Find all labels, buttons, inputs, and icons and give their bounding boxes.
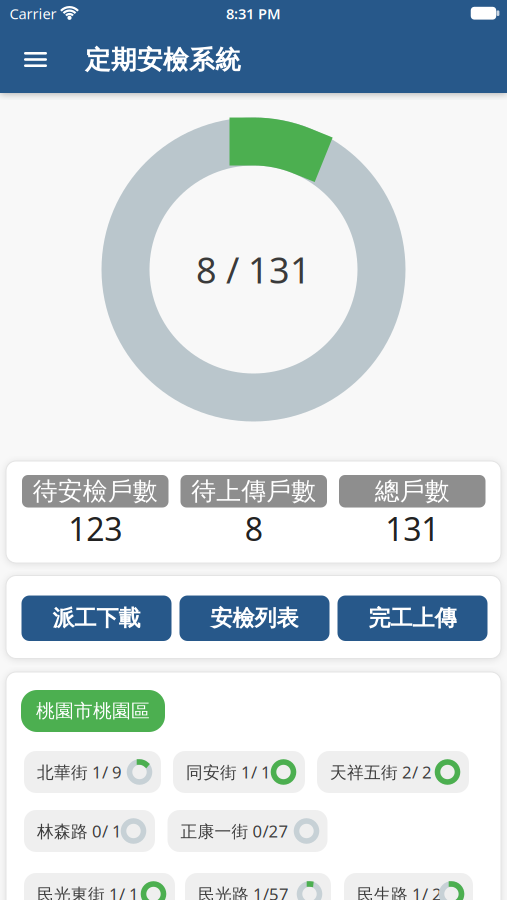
staticText: 8 / 131 <box>196 245 311 294</box>
staticText: 派工下載 <box>52 604 140 632</box>
staticText: 總戶數 <box>375 476 450 507</box>
staticText: 民光東街 1/ 1 <box>37 883 139 900</box>
staticText: 民光路 1/57 <box>198 883 289 900</box>
staticText: 天祥五街 2/ 2 <box>330 761 432 783</box>
button[interactable]: 北華街 1/ 9 <box>24 751 161 793</box>
staticText: Carrier <box>9 4 56 23</box>
staticText: 131 <box>385 507 439 550</box>
staticText: 林森路 0/ 1 <box>37 820 122 842</box>
staticText: 待安檢戶數 <box>33 476 158 507</box>
staticText: 8 <box>245 507 263 550</box>
button[interactable]: Menu <box>13 39 57 79</box>
staticText: 正康一街 0/27 <box>180 820 288 842</box>
staticText: 同安街 1/ 1 <box>186 761 271 783</box>
button[interactable]: 正康一街 0/27 <box>167 810 327 852</box>
staticText: 民生路 1/ 2 <box>357 883 442 900</box>
staticText: 123 <box>68 507 122 550</box>
staticText: 桃園市桃園區 <box>36 699 150 722</box>
button[interactable]: 派工下載 <box>21 595 171 641</box>
button[interactable]: 同安街 1/ 1 <box>173 751 305 793</box>
button[interactable]: 安檢列表 <box>179 595 329 641</box>
staticText: 8:31 PM <box>226 4 281 23</box>
button[interactable]: 民光路 1/57 <box>185 873 331 900</box>
button[interactable]: 民生路 1/ 2 <box>344 873 473 900</box>
staticText: 待上傳戶數 <box>191 476 316 507</box>
button[interactable]: 天祥五街 2/ 2 <box>317 751 469 793</box>
button[interactable]: 民光東街 1/ 1 <box>24 873 175 900</box>
staticText: 安檢列表 <box>210 604 298 632</box>
staticText: 定期安檢系統 <box>85 44 241 76</box>
button[interactable]: 林森路 0/ 1 <box>24 810 155 852</box>
staticText: 北華街 1/ 9 <box>37 761 122 783</box>
button[interactable]: 完工上傳 <box>337 595 487 641</box>
staticText: 完工上傳 <box>368 604 456 632</box>
